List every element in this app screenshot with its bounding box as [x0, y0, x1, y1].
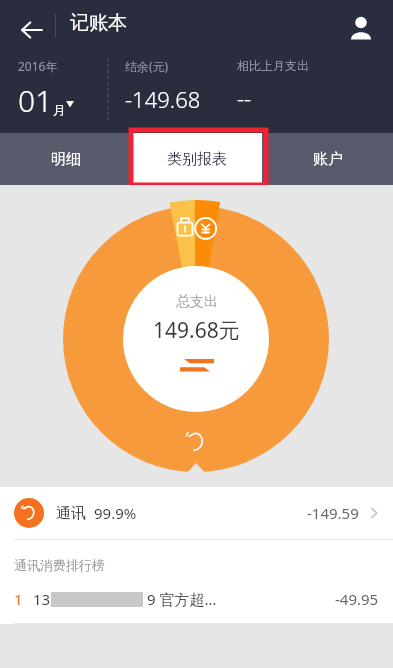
button[interactable]: 1 [0, 589, 393, 609]
staticText: 相比上月支出 [237, 58, 309, 73]
button[interactable]: Back [8, 6, 56, 54]
staticText: 通讯消费排行榜 [14, 557, 105, 573]
staticText: 总支出 [176, 293, 218, 311]
staticText: 99.9% [94, 503, 137, 523]
staticText: 记账本 [70, 11, 127, 35]
button[interactable]: 通讯 [0, 487, 393, 539]
staticText: -149.68 [125, 84, 201, 114]
button[interactable]: 类别报表 [131, 133, 262, 185]
button[interactable]: 2016年 [0, 58, 108, 121]
staticText: 9 官方超… [143, 589, 217, 609]
staticText: 13 [33, 589, 51, 609]
staticText: 月 [53, 102, 66, 118]
staticText: 149.68元 [153, 316, 240, 345]
staticText: 2016年 [18, 58, 58, 74]
staticText: -- [237, 83, 252, 113]
staticText: 账户 [313, 150, 343, 169]
staticText: 1 [14, 589, 23, 609]
staticText: 通讯 [56, 504, 86, 523]
staticText: -49.95 [335, 589, 379, 609]
button[interactable]: 明细 [0, 133, 131, 185]
staticText: 明细 [51, 150, 81, 169]
staticText: -149.59 [307, 503, 359, 523]
staticText: 01 [18, 80, 53, 121]
button[interactable]: 账户 [262, 133, 393, 185]
staticText: 类别报表 [167, 150, 227, 169]
button[interactable]: Profile [337, 4, 385, 52]
staticText: 结余(元) [125, 58, 169, 74]
